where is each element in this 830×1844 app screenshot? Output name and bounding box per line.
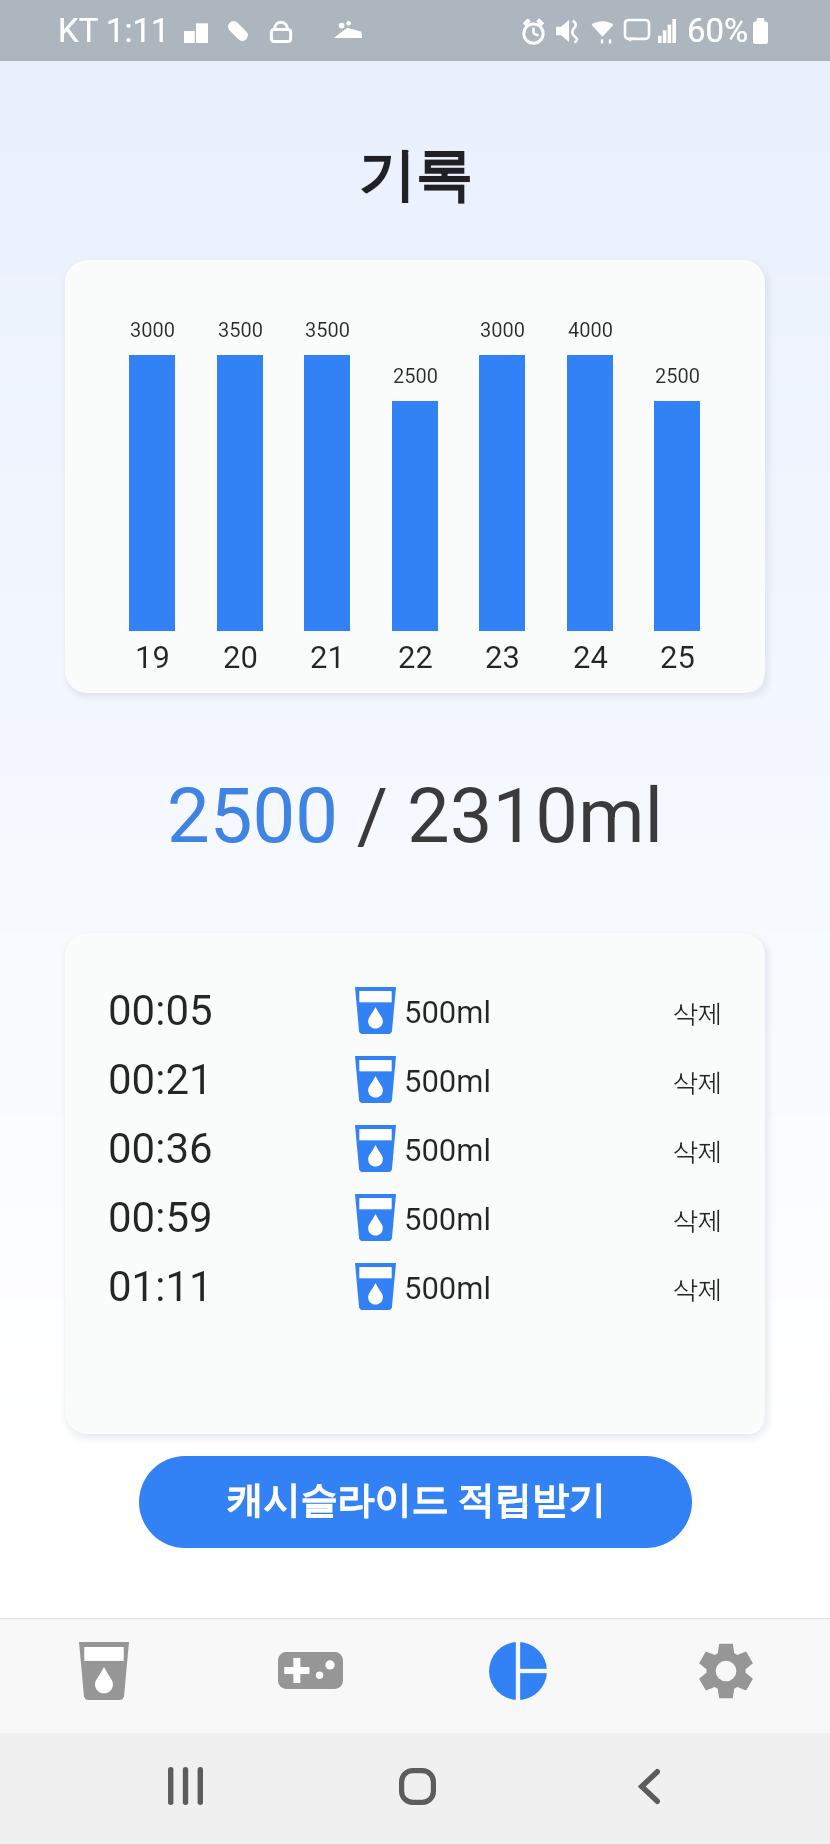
staticText: 60% — [687, 11, 749, 50]
staticText: 500ml — [404, 1132, 491, 1168]
staticText: 00:21 — [108, 1055, 213, 1104]
staticText: 00:36 — [108, 1124, 213, 1173]
staticText: 23 — [485, 639, 520, 675]
staticText: 삭제 — [673, 998, 723, 1029]
button[interactable]: 캐시슬라이드 적립받기 — [139, 1456, 692, 1548]
staticText: 삭제 — [673, 1274, 723, 1305]
staticText: 500ml — [404, 1201, 491, 1237]
button[interactable]: Statistics — [414, 1613, 622, 1728]
button[interactable]: 01:11 — [65, 1252, 765, 1320]
staticText: 25 — [660, 639, 695, 675]
staticText: 2500 — [655, 364, 700, 387]
button[interactable]: 00:36 — [65, 1114, 765, 1182]
button[interactable]: Back — [609, 1746, 689, 1826]
staticText: 3500 — [305, 318, 350, 341]
button[interactable]: Home — [377, 1746, 457, 1826]
staticText: 20 — [223, 639, 258, 675]
button[interactable]: Recents — [145, 1746, 225, 1826]
staticText: 00:05 — [108, 986, 213, 1035]
button[interactable]: 00:59 — [65, 1183, 765, 1251]
staticText: 500ml — [404, 1063, 491, 1099]
staticText: 22 — [398, 639, 433, 675]
staticText: 3000 — [480, 318, 525, 341]
staticText: 500ml — [404, 1270, 491, 1306]
staticText: 21 — [310, 639, 345, 675]
staticText: 500ml — [404, 994, 491, 1030]
staticText: 3500 — [218, 318, 263, 341]
staticText: 19 — [135, 639, 170, 675]
staticText: / 2310ml — [338, 771, 664, 860]
staticText: 삭제 — [673, 1205, 723, 1236]
button[interactable]: Settings — [622, 1613, 830, 1728]
staticText: 3000 — [130, 318, 175, 341]
staticText: 01:11 — [108, 1262, 213, 1311]
staticText: 삭제 — [673, 1067, 723, 1098]
staticText: 00:59 — [108, 1193, 213, 1242]
button[interactable]: 00:05 — [65, 976, 765, 1044]
staticText: 24 — [573, 639, 608, 675]
staticText: 2500 — [393, 364, 438, 387]
button[interactable]: Water intake — [0, 1613, 207, 1728]
button[interactable]: Games — [207, 1613, 414, 1728]
staticText: 2500 — [167, 771, 338, 860]
button[interactable]: 00:21 — [65, 1045, 765, 1113]
staticText: 기록 — [358, 140, 472, 212]
staticText: 캐시슬라이드 적립받기 — [226, 1477, 606, 1524]
staticText: 삭제 — [673, 1136, 723, 1167]
staticText: 4000 — [568, 318, 613, 341]
staticText: KT 1:11 — [58, 11, 170, 50]
